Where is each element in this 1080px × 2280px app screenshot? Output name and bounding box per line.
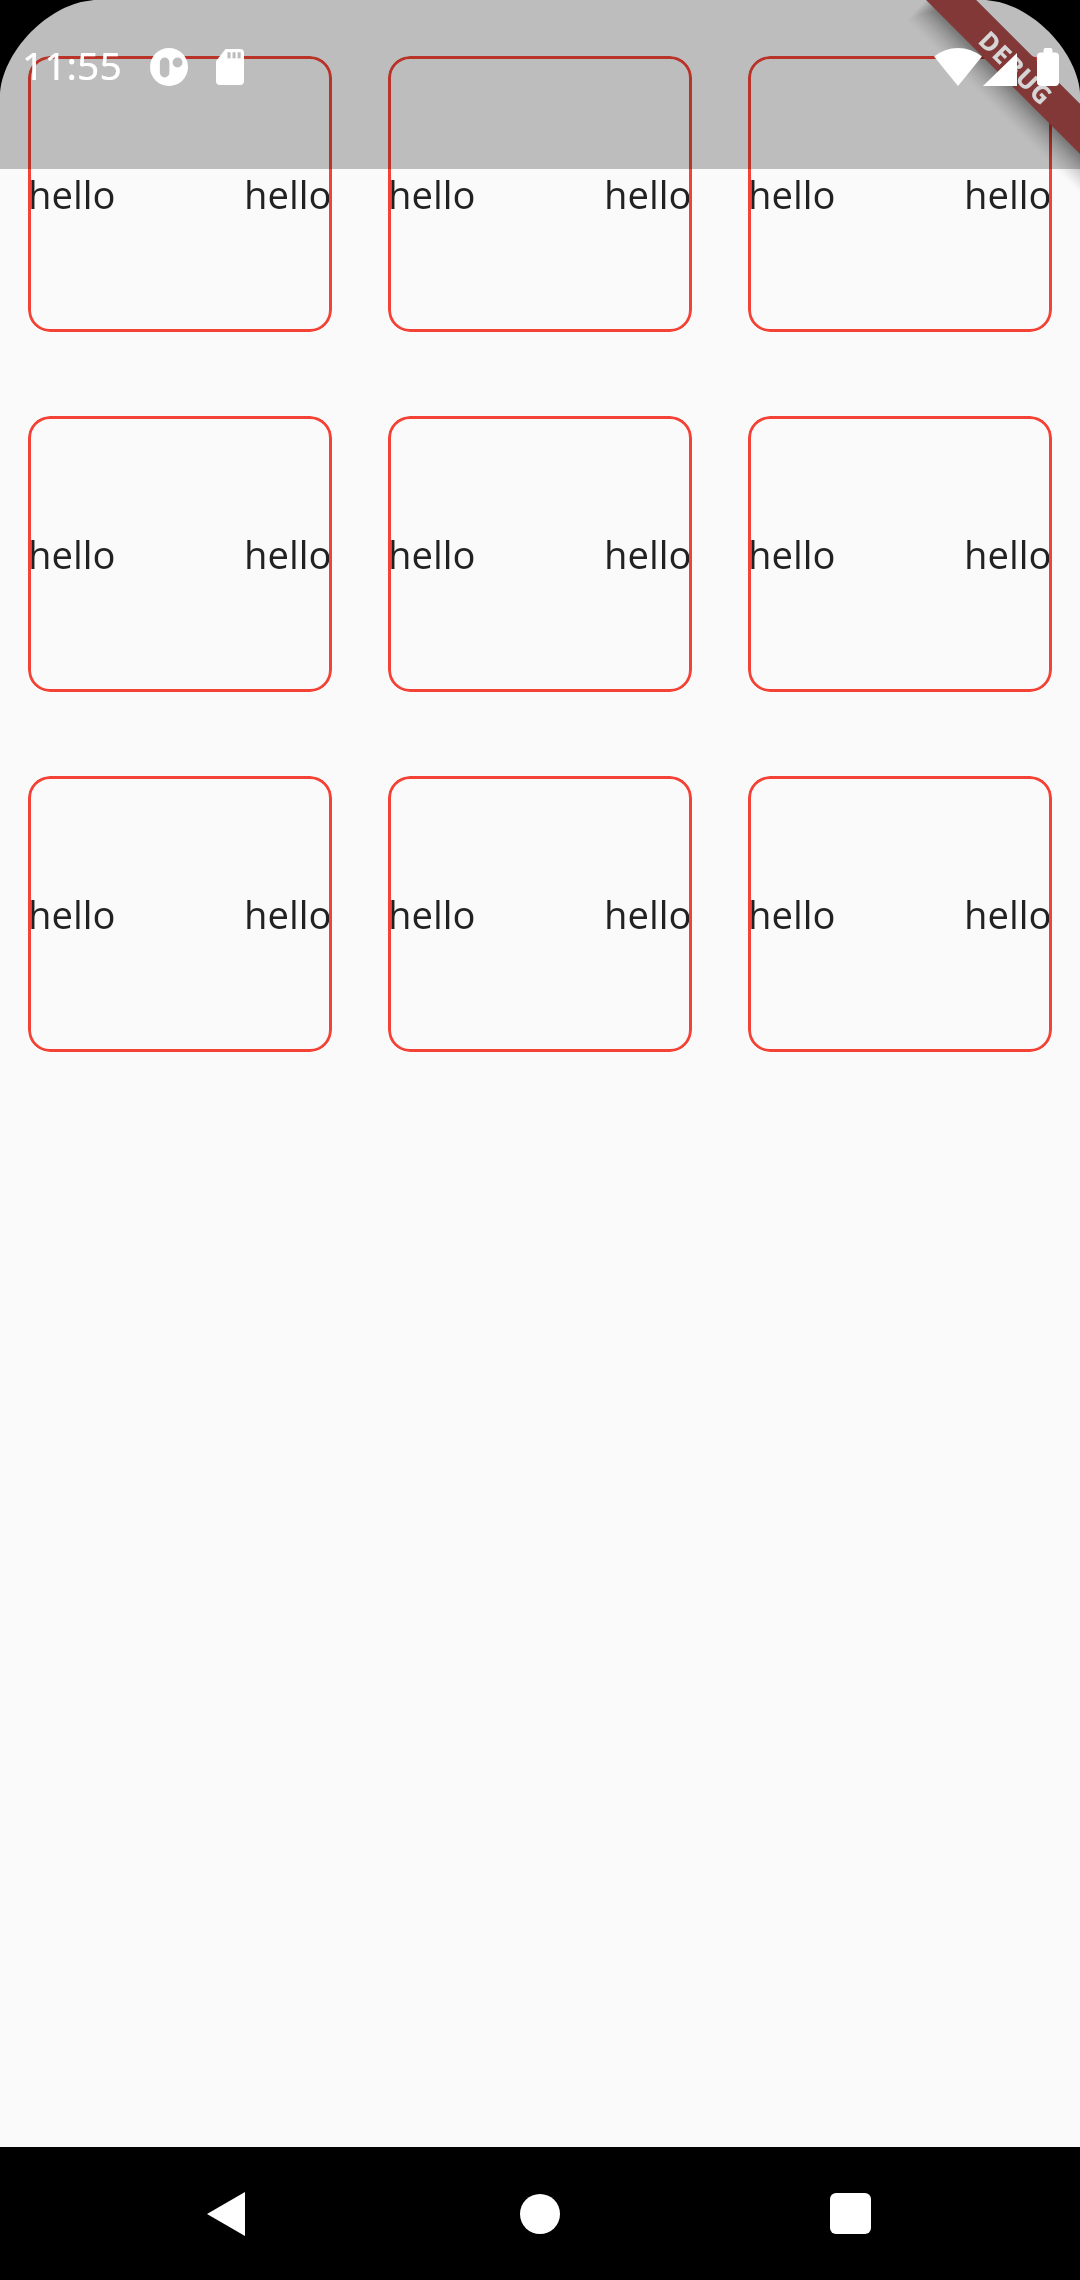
staticText: hello (748, 888, 836, 940)
button[interactable]: hello (748, 56, 1052, 332)
button[interactable]: Home (480, 2147, 600, 2280)
staticText: hello (964, 528, 1052, 580)
staticText: 11:55 (22, 38, 122, 91)
staticText: hello (604, 168, 692, 220)
staticText: hello (388, 168, 476, 220)
button[interactable]: hello (388, 776, 692, 1052)
button[interactable]: Back (166, 2147, 286, 2280)
staticText: hello (964, 888, 1052, 940)
staticText: hello (28, 168, 116, 220)
staticText: hello (748, 168, 836, 220)
staticText: hello (28, 888, 116, 940)
button[interactable]: hello (388, 56, 692, 332)
button[interactable]: hello (748, 416, 1052, 692)
button[interactable]: hello (28, 56, 332, 332)
staticText: hello (244, 168, 332, 220)
staticText: hello (388, 528, 476, 580)
staticText: hello (964, 168, 1052, 220)
staticText: hello (388, 888, 476, 940)
button[interactable]: Recent apps (790, 2147, 910, 2280)
button[interactable]: hello (388, 416, 692, 692)
staticText: hello (28, 528, 116, 580)
button[interactable]: hello (28, 776, 332, 1052)
staticText: hello (244, 528, 332, 580)
button[interactable]: hello (748, 776, 1052, 1052)
staticText: hello (748, 528, 836, 580)
staticText: hello (604, 888, 692, 940)
staticText: hello (244, 888, 332, 940)
staticText: hello (604, 528, 692, 580)
button[interactable]: hello (28, 416, 332, 692)
